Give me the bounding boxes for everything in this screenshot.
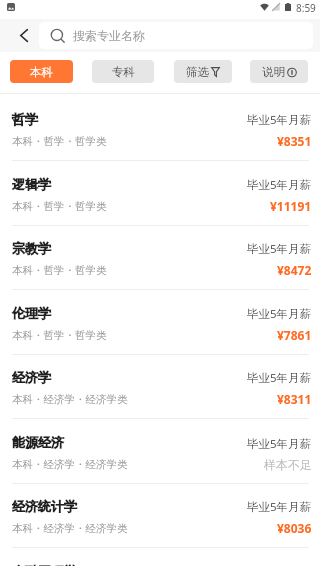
button[interactable]: 本科 bbox=[10, 60, 73, 83]
staticText: 说明 bbox=[262, 65, 285, 79]
staticText: 宗教学 bbox=[12, 240, 51, 256]
button[interactable]: Back bbox=[0, 19, 39, 52]
staticText: 毕业5年月薪 bbox=[247, 499, 312, 515]
button[interactable]: 能源经济 bbox=[0, 419, 320, 484]
staticText: 专科 bbox=[112, 65, 135, 79]
button[interactable]: 专科 bbox=[92, 60, 154, 83]
staticText: 8:59 bbox=[296, 1, 316, 15]
staticText: ¥8351 bbox=[277, 133, 312, 149]
staticText: 本科 bbox=[30, 65, 53, 79]
staticText: 毕业5年月薪 bbox=[247, 436, 312, 452]
staticText: 伦理学 bbox=[12, 305, 51, 321]
staticText: 样本不足 bbox=[264, 457, 312, 472]
staticText: 逻辑学 bbox=[12, 176, 51, 192]
staticText: 本科・经济学・经济学类 bbox=[12, 522, 128, 535]
staticText: 经济统计学 bbox=[12, 498, 77, 514]
button[interactable]: 说明 bbox=[250, 60, 308, 83]
staticText: 本科・经济学・经济学类 bbox=[12, 393, 128, 406]
button[interactable]: 经济学 bbox=[0, 354, 320, 419]
staticText: 经济学 bbox=[12, 369, 51, 385]
staticText: ¥8311 bbox=[277, 391, 312, 407]
button[interactable]: 经济统计学 bbox=[0, 483, 320, 548]
staticText: ¥8036 bbox=[277, 520, 312, 536]
staticText: 本科・哲学・哲学类 bbox=[12, 329, 107, 342]
staticText: 毕业5年月薪 bbox=[247, 241, 312, 257]
staticText: 毕业5年月薪 bbox=[247, 177, 312, 193]
staticText: 本科・经济学・经济学类 bbox=[12, 458, 128, 471]
staticText: 金融工程学 bbox=[12, 563, 77, 566]
staticText: 筛选 bbox=[186, 65, 209, 79]
button[interactable]: 伦理学 bbox=[0, 290, 320, 355]
staticText: ¥8472 bbox=[277, 262, 312, 278]
staticText: ¥7861 bbox=[277, 327, 312, 343]
staticText: 搜索专业名称 bbox=[73, 28, 145, 43]
button[interactable]: 哲学 bbox=[0, 96, 320, 161]
button[interactable]: 搜索专业名称 bbox=[39, 22, 313, 49]
staticText: 毕业5年月薪 bbox=[247, 112, 312, 128]
staticText: 本科・哲学・哲学类 bbox=[12, 135, 107, 148]
staticText: 能源经济 bbox=[12, 434, 64, 450]
button[interactable]: 宗教学 bbox=[0, 225, 320, 290]
staticText: 本科・哲学・哲学类 bbox=[12, 200, 107, 213]
staticText: 哲学 bbox=[12, 111, 38, 127]
button[interactable]: 金融工程学 bbox=[0, 548, 320, 566]
button[interactable]: 筛选 bbox=[174, 60, 232, 83]
button[interactable]: 逻辑学 bbox=[0, 161, 320, 226]
staticText: 毕业5年月薪 bbox=[247, 306, 312, 322]
staticText: 毕业5年月薪 bbox=[247, 370, 312, 386]
staticText: ¥11191 bbox=[270, 198, 312, 214]
staticText: 本科・哲学・哲学类 bbox=[12, 264, 107, 277]
